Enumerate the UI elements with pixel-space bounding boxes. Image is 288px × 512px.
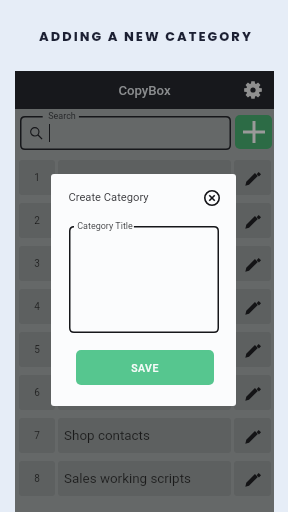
button[interactable]: Edit [234,160,271,195]
button[interactable]: 3 [19,246,55,281]
button[interactable]: Close dialog [199,185,225,211]
staticText: 6 [34,387,40,399]
staticText: 3 [34,258,40,270]
button[interactable]: Add category [235,115,272,149]
button[interactable]: Edit [234,418,271,453]
button[interactable]: Category Title [69,226,219,333]
button[interactable]: 5 [19,332,55,367]
button[interactable]: 1 [19,160,55,195]
staticText: SAVE [131,362,159,374]
button[interactable]: Edit [234,203,271,238]
button[interactable] [58,160,231,195]
staticText: 7 [34,430,40,442]
button[interactable]: Edit [234,332,271,367]
button[interactable]: 4 [19,289,55,324]
button[interactable]: Sales working scripts [58,461,231,496]
staticText: Sales working scripts [64,471,191,487]
staticText: CopyBox [118,83,171,98]
button[interactable] [58,203,231,238]
staticText: 1 [34,172,40,184]
staticText: 5 [34,344,40,356]
button[interactable]: Edit [234,375,271,410]
staticText: 4 [34,301,40,313]
staticText: Create Category [68,191,149,204]
button[interactable]: 2 [19,203,55,238]
button[interactable]: Edit [234,289,271,324]
staticText: Shop contacts [64,428,150,444]
button[interactable]: Shop contacts [58,418,231,453]
button[interactable]: Edit [234,461,271,496]
staticText: 8 [34,473,40,485]
button[interactable]: SAVE [76,350,214,385]
button[interactable]: Edit [234,246,271,281]
staticText: 2 [34,215,40,227]
button[interactable]: 6 [19,375,55,410]
button[interactable] [58,289,231,324]
button[interactable] [58,246,231,281]
staticText: Category Title [77,221,133,232]
staticText: Search [48,111,76,122]
button[interactable]: Search [20,116,231,150]
button[interactable] [58,375,231,410]
button[interactable]: 7 [19,418,55,453]
button[interactable]: Settings [239,76,267,104]
button[interactable]: 8 [19,461,55,496]
staticText: ADDING A NEW CATEGORY [39,28,253,46]
button[interactable] [58,332,231,367]
